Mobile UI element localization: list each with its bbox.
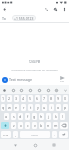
button[interactable]: w [7, 104, 12, 111]
staticText: 0 [64, 96, 67, 101]
button[interactable]: s [11, 113, 16, 120]
staticText: e [15, 105, 18, 110]
button[interactable]: 9 [56, 95, 61, 102]
staticText: i [51, 105, 52, 110]
staticText: , [15, 133, 16, 137]
button[interactable]: Emoji [0, 75, 9, 84]
button[interactable]: Symbols [1, 131, 11, 138]
button[interactable]: Space [20, 131, 50, 138]
button[interactable]: Search [51, 5, 60, 14]
button[interactable]: 1 [1, 95, 5, 102]
staticText: g [33, 114, 36, 119]
button[interactable]: 7 [42, 95, 47, 102]
button[interactable]: 5 [28, 95, 33, 102]
staticText: 6 [36, 96, 39, 101]
staticText: y [37, 105, 39, 110]
button[interactable]: Google Assistant [1, 87, 7, 93]
staticText: SMS [60, 80, 65, 83]
button[interactable]: d [18, 113, 23, 120]
staticText: 2 [8, 96, 11, 101]
button[interactable]: Recent apps [49, 140, 59, 150]
button[interactable]: Stickers [18, 87, 24, 93]
button[interactable]: z [11, 122, 16, 129]
staticText: s [13, 114, 15, 119]
button[interactable]: r [21, 104, 26, 111]
button[interactable]: +1 555-0123 [12, 15, 36, 21]
button[interactable]: l [60, 113, 65, 120]
button[interactable]: Back [0, 5, 9, 14]
staticText: j [48, 114, 49, 119]
staticText: m [54, 123, 58, 128]
button[interactable]: x [18, 122, 23, 129]
button[interactable]: Home [30, 140, 40, 150]
button[interactable]: Translate [36, 87, 42, 93]
staticText: 9 [57, 96, 60, 101]
staticText: l [62, 114, 63, 119]
staticText: 5 [29, 96, 32, 101]
button[interactable]: g [32, 113, 37, 120]
staticText: n [47, 123, 50, 128]
button[interactable]: 3 [14, 95, 19, 102]
button[interactable]: h [39, 113, 44, 120]
staticText: d [19, 114, 22, 119]
staticText: +1 555-0123 [14, 16, 34, 21]
staticText: Text message [9, 77, 32, 82]
button[interactable]: Enter [59, 131, 68, 138]
staticText: 4 [22, 96, 25, 101]
button[interactable]: More [62, 87, 68, 93]
staticText: x [20, 123, 22, 128]
staticText: r [23, 105, 25, 110]
button[interactable]: Emoji [27, 87, 33, 93]
staticText: 7 [43, 96, 46, 101]
button[interactable]: Shift [1, 122, 9, 129]
button[interactable]: q [1, 104, 5, 111]
button[interactable]: m [53, 122, 58, 129]
button[interactable]: i [49, 104, 54, 111]
button[interactable]: p [63, 104, 68, 111]
staticText: b [40, 123, 43, 128]
staticText: . [54, 133, 55, 137]
staticText: 3 [15, 96, 18, 101]
staticText: c [27, 123, 29, 128]
button[interactable]: v [32, 122, 37, 129]
staticText: o [57, 105, 60, 110]
button[interactable]: Call [42, 5, 51, 14]
staticText: w [8, 105, 11, 110]
button[interactable]: Period [52, 131, 57, 138]
button[interactable]: u [42, 104, 47, 111]
button[interactable]: f [25, 113, 30, 120]
button[interactable]: 8 [49, 95, 54, 102]
button[interactable]: 4 [21, 95, 26, 102]
button[interactable]: o [56, 104, 61, 111]
button[interactable]: n [46, 122, 51, 129]
button[interactable]: Comma [13, 131, 18, 138]
staticText: q [2, 105, 5, 110]
button[interactable]: c [25, 122, 30, 129]
staticText: t [30, 105, 32, 110]
button[interactable]: Clipboard [45, 87, 51, 93]
button[interactable]: j [46, 113, 51, 120]
staticText: f [27, 114, 29, 119]
button[interactable]: t [28, 104, 33, 111]
button[interactable]: Back [10, 140, 20, 150]
staticText: v [34, 123, 36, 128]
button[interactable]: 2 [7, 95, 12, 102]
button[interactable]: a [4, 113, 9, 120]
staticText: a [5, 114, 8, 119]
button[interactable]: y [35, 104, 40, 111]
button[interactable]: Backspace [60, 122, 68, 129]
button[interactable]: GIF [10, 87, 16, 93]
button[interactable]: Settings [53, 87, 59, 93]
staticText: z [13, 123, 15, 128]
button[interactable]: k [53, 113, 58, 120]
button[interactable]: 6 [35, 95, 40, 102]
button[interactable]: Send SMS [57, 74, 68, 85]
staticText: u [43, 105, 46, 110]
staticText: Introducing chat features for Messages [2, 68, 67, 71]
button[interactable]: 0 [63, 95, 68, 102]
button[interactable]: e [14, 104, 19, 111]
staticText: h [40, 114, 43, 119]
button[interactable]: More options [60, 5, 69, 14]
staticText: k [55, 114, 57, 119]
button[interactable]: b [39, 122, 44, 129]
